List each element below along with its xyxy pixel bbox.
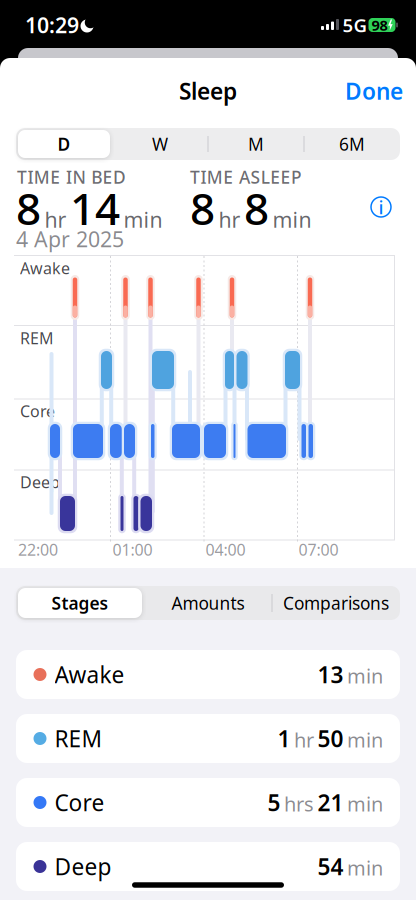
staticText: TIME IN BED [17, 165, 126, 188]
staticText: REM [20, 327, 54, 349]
staticText: 04:00 [205, 539, 245, 560]
staticText: W [152, 132, 168, 155]
staticText: min [347, 854, 383, 881]
button[interactable]: More info [369, 195, 393, 219]
staticText: min [347, 790, 383, 817]
staticText: 8 [244, 179, 269, 237]
staticText: 13 [317, 659, 343, 689]
button[interactable]: Amounts [146, 588, 270, 618]
staticText: hr [218, 205, 240, 234]
staticText: hrs [284, 790, 314, 817]
staticText: Deep [20, 471, 60, 493]
staticText: 01:00 [112, 539, 152, 560]
staticText: 10:29 [25, 11, 79, 39]
staticText: 5 [267, 787, 280, 817]
staticText: 8 [16, 179, 41, 237]
staticText: 6M [339, 132, 365, 155]
staticText: 98 [371, 15, 387, 35]
button[interactable]: Stages [18, 588, 142, 618]
staticText: 14 [70, 179, 120, 237]
staticText: 21 [317, 787, 343, 817]
staticText: Done [345, 76, 403, 106]
button[interactable]: REM [16, 714, 400, 763]
staticText: min [123, 205, 162, 234]
staticText: min [347, 726, 383, 753]
staticText: Sleep [179, 76, 237, 106]
staticText: 07:00 [298, 539, 338, 560]
button[interactable]: Deep [16, 842, 400, 891]
staticText: Amounts [171, 591, 244, 614]
staticText: min [347, 662, 383, 689]
button[interactable]: Awake [16, 650, 400, 699]
staticText: Comparisons [283, 591, 389, 614]
staticText: Awake [20, 257, 70, 279]
staticText: 4 Apr 2025 [16, 225, 124, 253]
staticText: 54 [317, 851, 343, 881]
staticText: 50 [317, 723, 343, 753]
staticText: 8 [190, 179, 215, 237]
button[interactable]: Comparisons [274, 588, 398, 618]
staticText: M [248, 132, 264, 155]
staticText: 22:00 [18, 539, 58, 560]
staticText: min [272, 205, 311, 234]
staticText: 1 [277, 723, 290, 753]
button[interactable]: W [114, 130, 206, 158]
staticText: Awake [54, 659, 124, 689]
button[interactable]: M [210, 130, 302, 158]
staticText: hr [44, 205, 66, 234]
button[interactable]: 6M [306, 130, 398, 158]
staticText: Core [20, 400, 55, 422]
staticText: Core [54, 787, 104, 817]
button[interactable]: Done [345, 76, 403, 106]
staticText: hr [294, 726, 314, 753]
staticText: D [57, 132, 70, 155]
staticText: TIME ASLEEP [190, 165, 302, 188]
button[interactable]: Core [16, 778, 400, 827]
staticText: Deep [54, 851, 111, 881]
button[interactable]: D [18, 130, 110, 158]
staticText: 5G [342, 13, 367, 37]
staticText: i [378, 195, 383, 219]
staticText: REM [54, 723, 102, 753]
staticText: Stages [51, 591, 108, 614]
